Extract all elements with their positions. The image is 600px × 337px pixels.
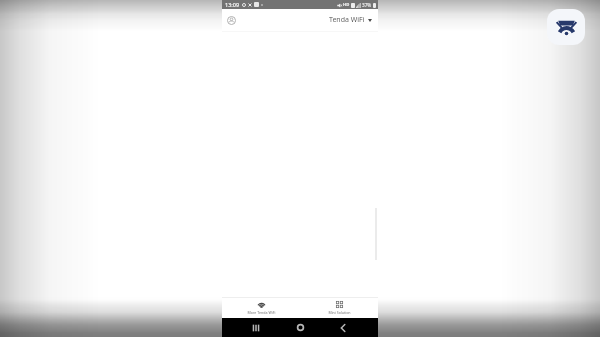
staticText: HD bbox=[343, 2, 350, 8]
button[interactable]: Mini Solution bbox=[300, 298, 378, 318]
staticText: 13:09 bbox=[225, 1, 240, 8]
button[interactable]: Recent apps bbox=[246, 318, 266, 337]
button[interactable]: Channel logo bbox=[547, 9, 585, 45]
button[interactable]: Tenda WiFi bbox=[329, 15, 372, 25]
staticText: Tenda WiFi bbox=[329, 15, 365, 25]
staticText: 37% bbox=[362, 2, 372, 8]
button[interactable]: More Tenda WiFi bbox=[222, 298, 300, 318]
button[interactable]: Back bbox=[333, 318, 353, 337]
button[interactable]: Account bbox=[225, 14, 238, 27]
staticText: More Tenda WiFi bbox=[247, 310, 276, 315]
staticText: Mini Solution bbox=[328, 310, 351, 315]
button[interactable]: Home bbox=[290, 318, 310, 337]
